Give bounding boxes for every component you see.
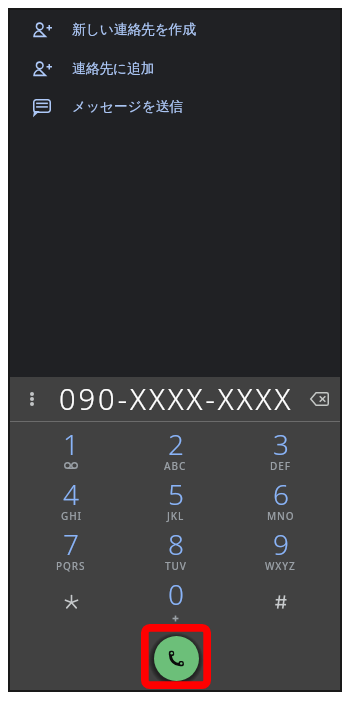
button[interactable]: 3 — [228, 425, 333, 475]
staticText: 3 — [273, 425, 289, 463]
staticText: 6 — [273, 475, 289, 513]
button[interactable]: 8 — [123, 525, 228, 575]
staticText: 5 — [168, 475, 184, 513]
button[interactable]: 7 — [19, 525, 123, 575]
button[interactable]: 新しい連絡先を作成 — [10, 11, 340, 48]
button[interactable]: メッセージを送信 — [10, 88, 340, 125]
staticText: 8 — [168, 525, 184, 563]
button[interactable]: 2 — [123, 425, 228, 475]
staticText: 新しい連絡先を作成 — [72, 21, 197, 38]
staticText: JKL — [167, 509, 185, 523]
button[interactable]: More options — [18, 385, 46, 413]
staticText: PQRS — [56, 559, 86, 573]
staticText: TUV — [165, 559, 187, 573]
button[interactable] — [228, 575, 333, 625]
button[interactable]: 4 — [19, 475, 123, 525]
staticText: 090-XXXX-XXXX — [59, 379, 294, 418]
staticText: 7 — [63, 525, 79, 563]
staticText: 2 — [168, 425, 184, 463]
button[interactable]: 5 — [123, 475, 228, 525]
staticText: 9 — [273, 525, 289, 563]
staticText: GHI — [61, 509, 82, 523]
button[interactable]: 0 — [123, 575, 228, 625]
button[interactable]: Call — [154, 636, 199, 681]
staticText: 連絡先に追加 — [72, 60, 155, 77]
button[interactable]: 6 — [228, 475, 333, 525]
staticText: WXYZ — [265, 559, 296, 573]
button[interactable]: 1 — [19, 425, 123, 475]
staticText: MNO — [267, 509, 295, 523]
staticText: ABC — [164, 459, 187, 473]
button[interactable]: 9 — [228, 525, 333, 575]
button[interactable]: 連絡先に追加 — [10, 50, 340, 87]
staticText: 4 — [63, 475, 79, 513]
staticText: DEF — [270, 459, 291, 473]
button[interactable]: Backspace — [304, 384, 334, 414]
staticText: メッセージを送信 — [72, 98, 184, 115]
button[interactable] — [19, 575, 123, 625]
staticText: 0 — [168, 575, 184, 613]
staticText: 1 — [63, 425, 79, 463]
